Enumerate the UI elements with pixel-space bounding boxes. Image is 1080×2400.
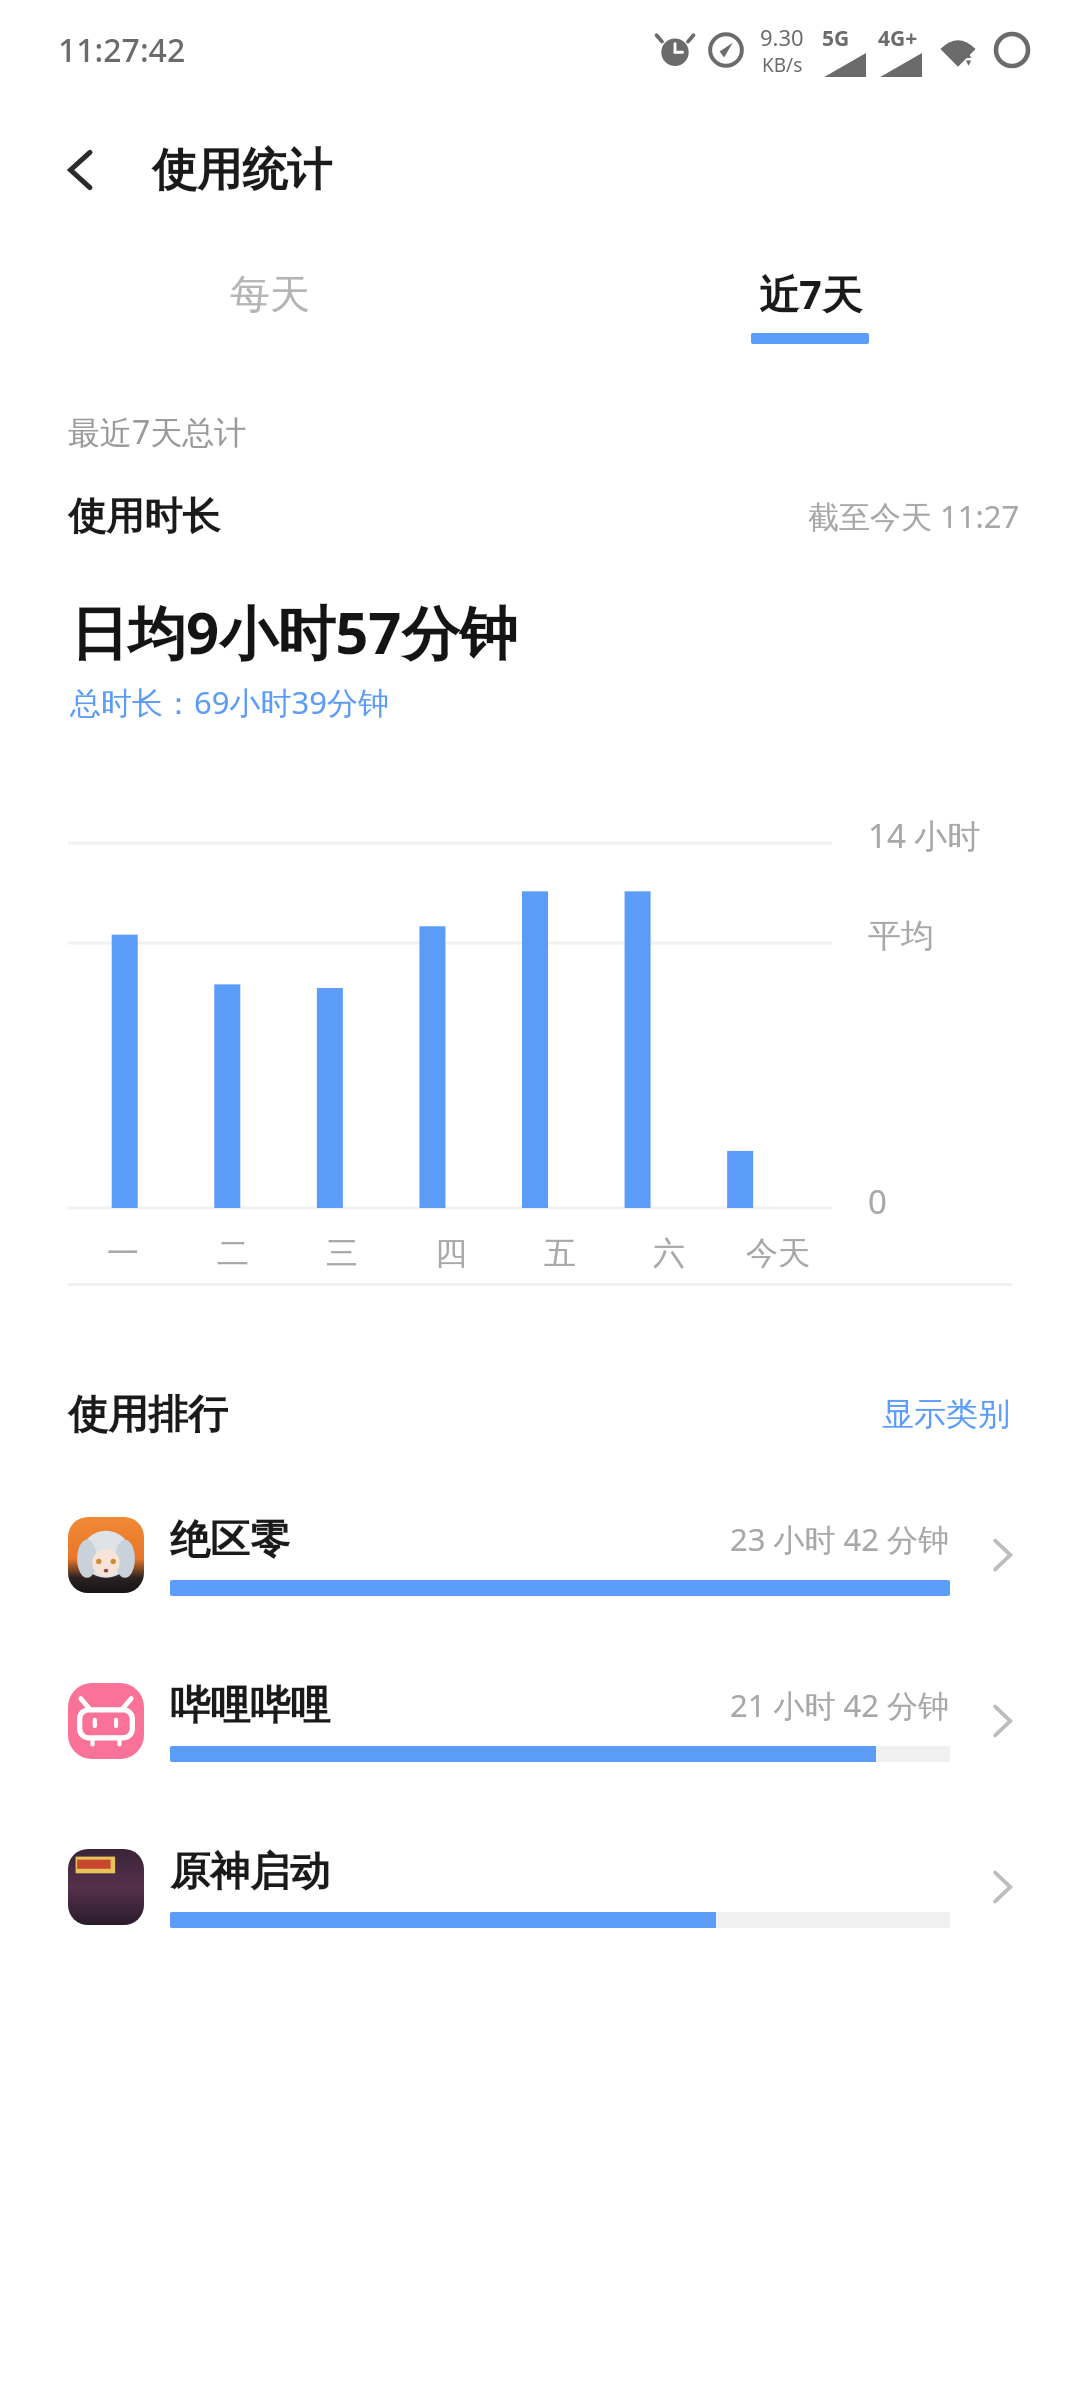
staticText: 使用排行 (68, 1389, 228, 1439)
staticText: KB/s (762, 52, 803, 78)
staticText: 四 (435, 1233, 467, 1273)
staticText: 截至今天 11:27 (808, 495, 1020, 537)
button[interactable]: 哔哩哔哩 (0, 1680, 1080, 1762)
staticText: 三 (326, 1233, 358, 1273)
button[interactable]: 每天 (0, 240, 540, 370)
staticText: 5G (822, 24, 850, 53)
staticText: 五 (544, 1233, 576, 1273)
staticText: 日均9小时57分钟 (70, 592, 518, 671)
staticText: 9.30 (760, 22, 804, 52)
staticText: 二 (217, 1233, 249, 1273)
staticText: 哔哩哔哩 (170, 1680, 330, 1730)
staticText: 总时长：69小时39分钟 (70, 681, 389, 723)
staticText: 今天 (746, 1233, 810, 1273)
staticText: 原神启动 (170, 1846, 330, 1896)
staticText: 0 (868, 1179, 887, 1224)
staticText: 显示类别 (882, 1394, 1010, 1434)
staticText: 21 小时 42 分钟 (730, 1684, 950, 1726)
staticText: 绝区零 (170, 1514, 290, 1564)
staticText: 使用时长 (68, 492, 220, 540)
button[interactable]: 绝区零 (0, 1514, 1080, 1596)
staticText: 使用统计 (152, 142, 332, 199)
staticText: 11:27:42 (58, 28, 186, 72)
staticText: 六 (653, 1233, 685, 1273)
staticText: 平均 (868, 915, 934, 957)
staticText: 每天 (230, 269, 310, 319)
button[interactable]: 原神启动 (0, 1846, 1080, 1928)
staticText: 一 (107, 1233, 139, 1273)
staticText: 14 小时 (868, 813, 981, 858)
staticText: 4G+ (878, 24, 918, 53)
button[interactable]: 显示类别 (874, 1386, 1018, 1442)
button[interactable]: 返回 (46, 134, 118, 206)
staticText: 23 小时 42 分钟 (730, 1518, 950, 1560)
button[interactable]: 近7天 (540, 240, 1080, 370)
staticText: 最近7天总计 (68, 410, 247, 454)
staticText: 近7天 (759, 266, 862, 321)
